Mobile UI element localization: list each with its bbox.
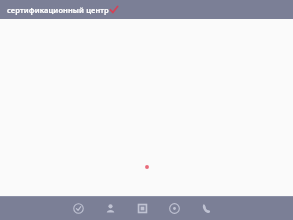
button[interactable]: Call — [197, 197, 215, 220]
staticText: сертификационный центр — [7, 5, 109, 15]
button[interactable]: Checked — [69, 197, 87, 220]
button[interactable]: сертификационный центр — [6, 4, 119, 16]
button[interactable]: Info — [165, 197, 183, 220]
button[interactable]: Profile — [101, 197, 119, 220]
button[interactable]: Documents — [133, 197, 151, 220]
